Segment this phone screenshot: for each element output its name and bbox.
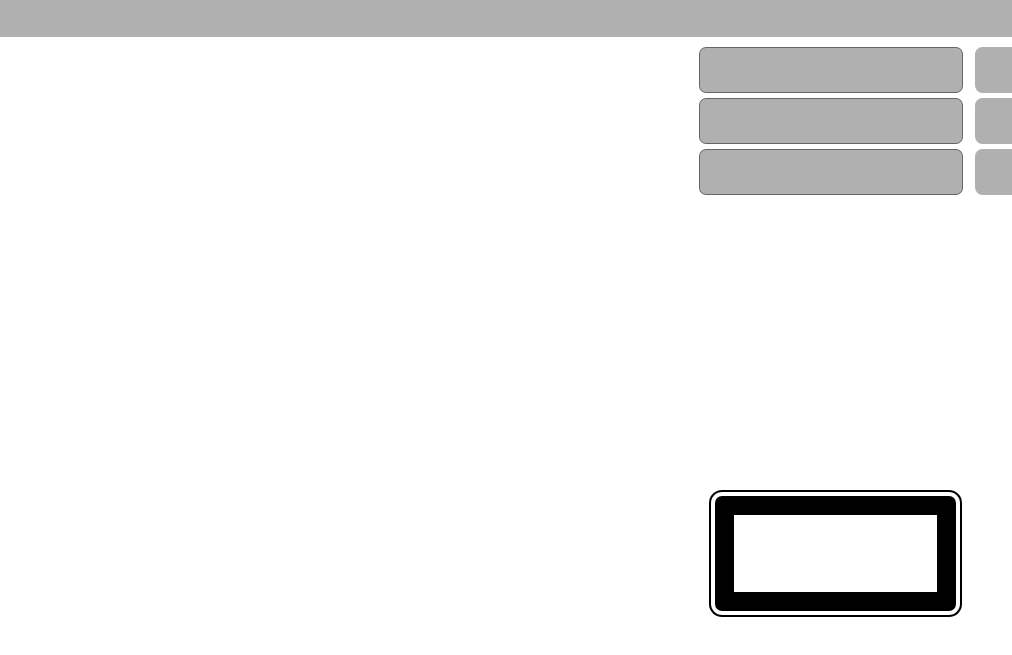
button[interactable]: List item 1 bbox=[699, 47, 963, 93]
button[interactable]: More options for item 3 bbox=[975, 149, 1012, 195]
button[interactable]: More options for item 2 bbox=[975, 98, 1012, 144]
button[interactable]: Device preview bbox=[715, 496, 956, 611]
button[interactable]: List item 3 bbox=[699, 149, 963, 195]
button[interactable]: More options for item 1 bbox=[975, 47, 1012, 93]
button[interactable]: List item 2 bbox=[699, 98, 963, 144]
